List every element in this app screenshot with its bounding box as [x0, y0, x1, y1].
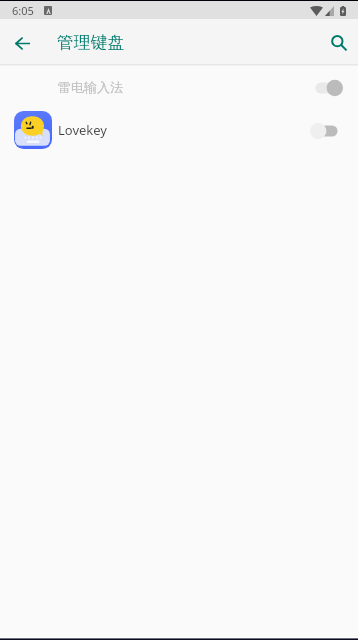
button[interactable]: Search [320, 24, 358, 62]
staticText: 雷电输入法 [58, 79, 123, 95]
staticText: Lovekey [58, 121, 107, 139]
button[interactable]: Disabled [310, 121, 343, 141]
button[interactable]: 雷电输入法 [0, 66, 358, 109]
button[interactable]: Lovekey [0, 109, 358, 152]
button[interactable]: Back [3, 24, 41, 62]
staticText: 管理键盘 [57, 32, 125, 53]
button[interactable]: Enabled [310, 78, 343, 98]
staticText: 6:05 [12, 3, 34, 18]
